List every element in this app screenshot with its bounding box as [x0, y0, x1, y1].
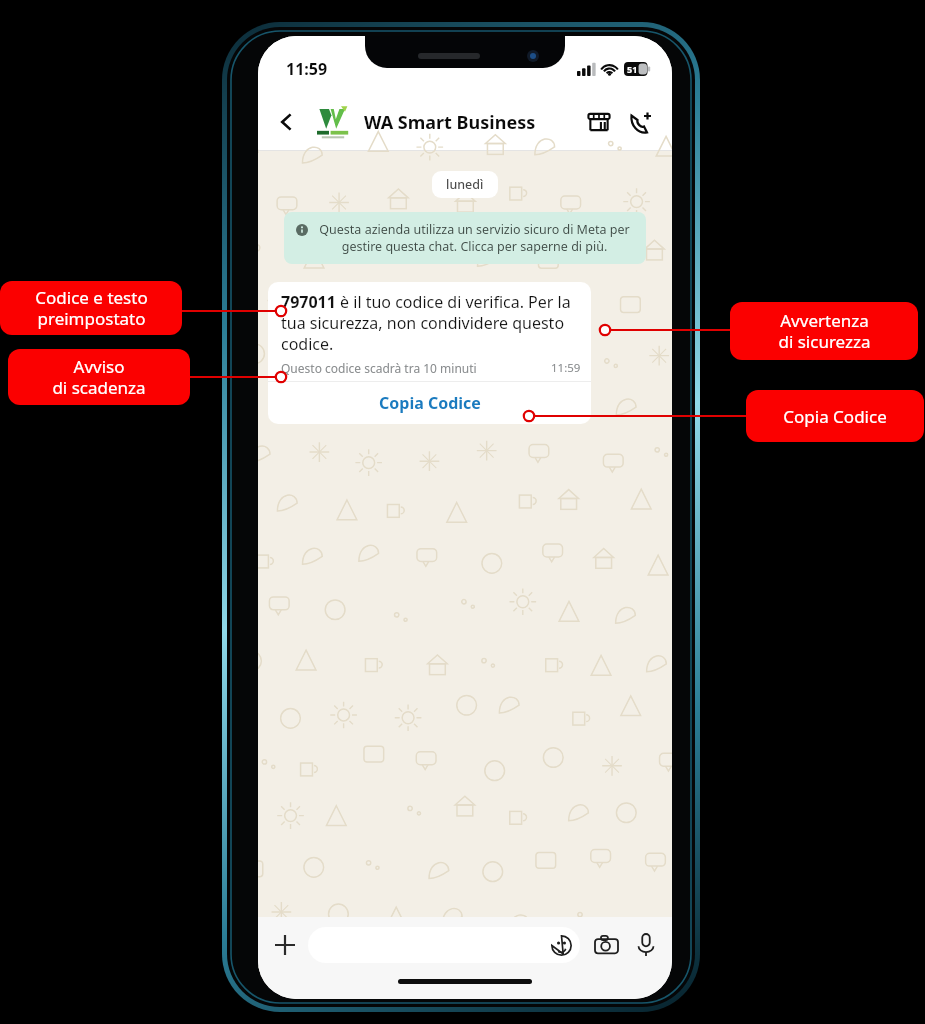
staticText: 11:59: [286, 58, 328, 80]
button[interactable]: Codice e testo preimpostato: [0, 281, 182, 335]
staticText: Copia Codice: [379, 392, 481, 414]
staticText: lunedì: [446, 176, 484, 193]
staticText: Questa azienda utilizza un servizio sicu…: [315, 221, 634, 255]
staticText: Copia Codice: [783, 405, 887, 428]
button[interactable]: lunedì: [432, 171, 498, 198]
button[interactable]: Chiama: [622, 103, 660, 141]
button[interactable]: WA Smart Business profile: [310, 103, 356, 141]
button[interactable]: Catalogo: [580, 103, 618, 141]
staticText: Avviso di scadenza: [52, 355, 146, 399]
staticText: Codice e testo preimpostato: [35, 286, 148, 330]
staticText: 797011 è il tuo codice di verifica. Per …: [281, 291, 581, 355]
button[interactable]: Copia Codice: [268, 382, 591, 424]
button[interactable]: Avviso di scadenza: [8, 349, 190, 405]
button[interactable]: Messaggio vocale: [630, 929, 662, 961]
staticText: Questo codice scadrà tra 10 minuti: [281, 360, 551, 376]
button[interactable]: Fotocamera: [590, 929, 622, 961]
staticText: 51: [627, 63, 638, 75]
button[interactable]: WA Smart Business: [364, 110, 580, 135]
staticText: 11:59: [551, 360, 581, 376]
staticText: Avvertenza di sicurezza: [778, 309, 871, 353]
button[interactable]: Avvertenza di sicurezza: [730, 302, 918, 360]
button[interactable]: [308, 927, 580, 963]
button[interactable]: Back: [270, 105, 304, 139]
button[interactable]: Copia Codice: [746, 390, 924, 442]
button[interactable]: Allega: [268, 928, 302, 962]
button[interactable]: Questa azienda utilizza un servizio sicu…: [284, 212, 646, 264]
